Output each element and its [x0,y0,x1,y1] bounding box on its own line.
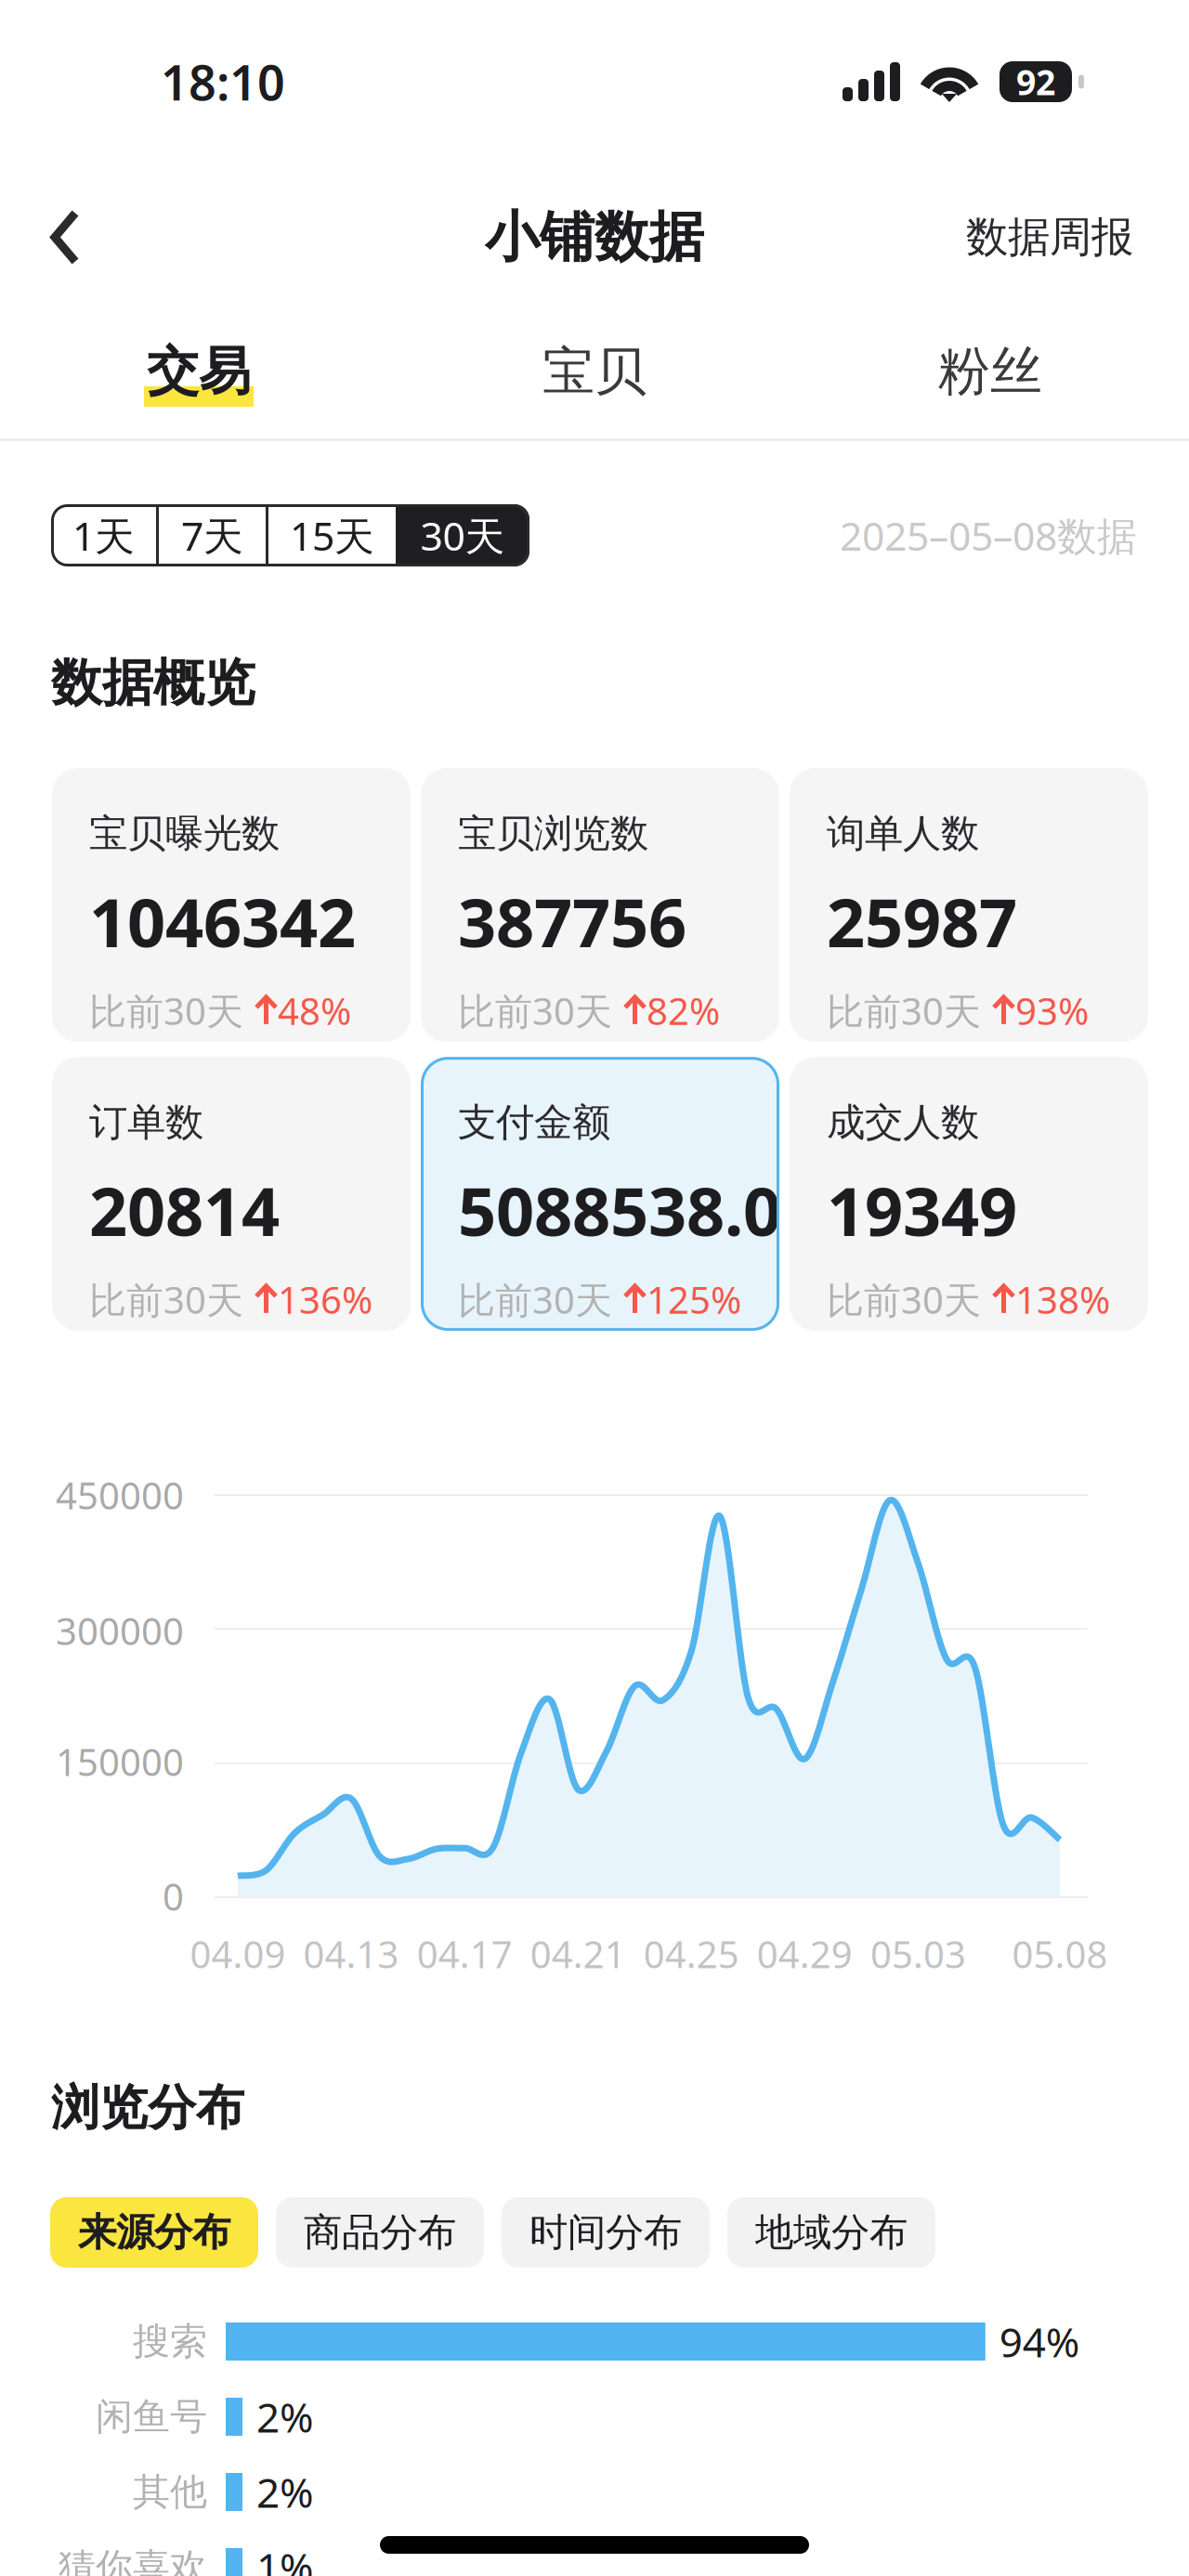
button[interactable]: Back [0,163,110,311]
staticText: 04.25 [644,1929,739,1978]
staticText: 04.17 [417,1929,512,1978]
staticText: 其他 [133,2469,207,2515]
staticText: 比前30天 [89,1275,243,1324]
staticText: 询单人数 [827,810,979,857]
staticText: 138% [1015,1275,1110,1324]
button[interactable]: 粉丝 [792,311,1188,432]
staticText: 1046342 [89,877,356,966]
staticText: 1% [256,2540,314,2576]
staticText: 92 [1016,59,1055,105]
staticText: 05.08 [1012,1929,1108,1978]
staticText: 04.09 [190,1929,286,1978]
staticText: 387756 [458,877,686,966]
staticText: 04.13 [303,1929,399,1978]
staticText: 94% [999,2314,1080,2369]
button[interactable]: 30天 [396,504,529,566]
button[interactable]: 询单人数 [790,768,1148,1042]
staticText: 比前30天 [827,986,981,1035]
button[interactable]: 1天 [51,504,156,566]
staticText: 19349 [827,1166,1017,1254]
staticText: 2025–05–08数据 [840,509,1137,562]
button[interactable]: 数据周报 [938,163,1189,311]
staticText: 0 [163,1872,184,1921]
staticText: 粉丝 [938,340,1042,403]
staticText: 18:10 [161,50,285,114]
staticText: 地域分布 [755,2209,908,2256]
staticText: 宝贝 [542,340,647,403]
button[interactable]: 订单数 [52,1057,411,1331]
staticText: 闲鱼号 [96,2394,207,2439]
staticText: 小铺数据 [485,204,704,271]
staticText: 比前30天 [89,986,243,1035]
staticText: 7天 [181,509,243,562]
staticText: 48% [278,986,351,1035]
staticText: 300000 [56,1606,184,1655]
staticText: 浏览分布 [51,2078,244,2138]
staticText: 93% [1015,986,1089,1035]
button[interactable]: 15天 [268,504,396,566]
staticText: 商品分布 [304,2209,456,2256]
button[interactable]: 商品分布 [276,2197,484,2268]
staticText: 比前30天 [458,1275,612,1324]
button[interactable]: 交易 [1,311,397,432]
button[interactable]: 来源分布 [50,2197,258,2268]
staticText: 2% [256,2465,314,2519]
button[interactable]: 宝贝曝光数 [52,768,411,1042]
staticText: 450000 [56,1470,184,1520]
staticText: 125% [647,1275,741,1324]
staticText: 猜你喜欢 [59,2544,207,2576]
button[interactable]: 支付金额 [421,1057,779,1331]
staticText: 宝贝曝光数 [89,810,280,857]
staticText: 2% [256,2390,314,2444]
staticText: 150000 [56,1737,184,1786]
staticText: 5088538.0 [458,1166,781,1254]
button[interactable]: 时间分布 [502,2197,710,2268]
staticText: 82% [647,986,720,1035]
staticText: 宝贝浏览数 [458,810,648,857]
staticText: 交易 [147,340,251,403]
button[interactable]: 地域分布 [727,2197,935,2268]
staticText: 比前30天 [827,1275,981,1324]
staticText: 05.03 [870,1929,966,1978]
staticText: 20814 [89,1166,280,1254]
staticText: 来源分布 [78,2209,230,2256]
staticText: 25987 [827,877,1017,966]
button[interactable]: 宝贝浏览数 [421,768,779,1042]
staticText: 数据周报 [966,211,1133,263]
staticText: 30天 [420,509,505,562]
staticText: 04.21 [530,1929,626,1978]
staticText: 04.29 [757,1929,853,1978]
button[interactable]: 成交人数 [790,1057,1148,1331]
staticText: 搜索 [133,2319,207,2364]
button[interactable]: 宝贝 [397,311,792,432]
staticText: 136% [278,1275,372,1324]
staticText: 15天 [290,509,374,562]
staticText: 数据概览 [51,652,255,714]
button[interactable]: 7天 [159,504,266,566]
staticText: 比前30天 [458,986,612,1035]
staticText: 时间分布 [529,2209,682,2256]
staticText: 订单数 [89,1099,203,1146]
staticText: 成交人数 [827,1099,979,1146]
staticText: 1天 [72,509,135,562]
staticText: 支付金额 [458,1099,610,1146]
